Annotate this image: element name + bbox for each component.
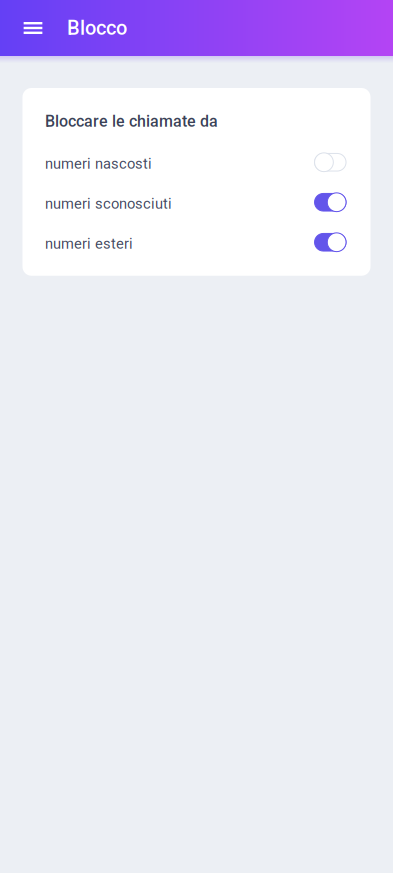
staticText: Blocco (67, 16, 127, 40)
button[interactable]: numeri sconosciuti (22, 184, 370, 224)
button[interactable]: Menu (14, 8, 52, 48)
staticText: Bloccare le chiamate da (45, 112, 218, 131)
button[interactable]: numeri esteri (22, 224, 370, 264)
staticText: numeri sconosciuti (45, 195, 172, 212)
staticText: numeri nascosti (45, 155, 152, 172)
button[interactable]: numeri nascosti (22, 144, 370, 184)
staticText: numeri esteri (45, 235, 133, 252)
